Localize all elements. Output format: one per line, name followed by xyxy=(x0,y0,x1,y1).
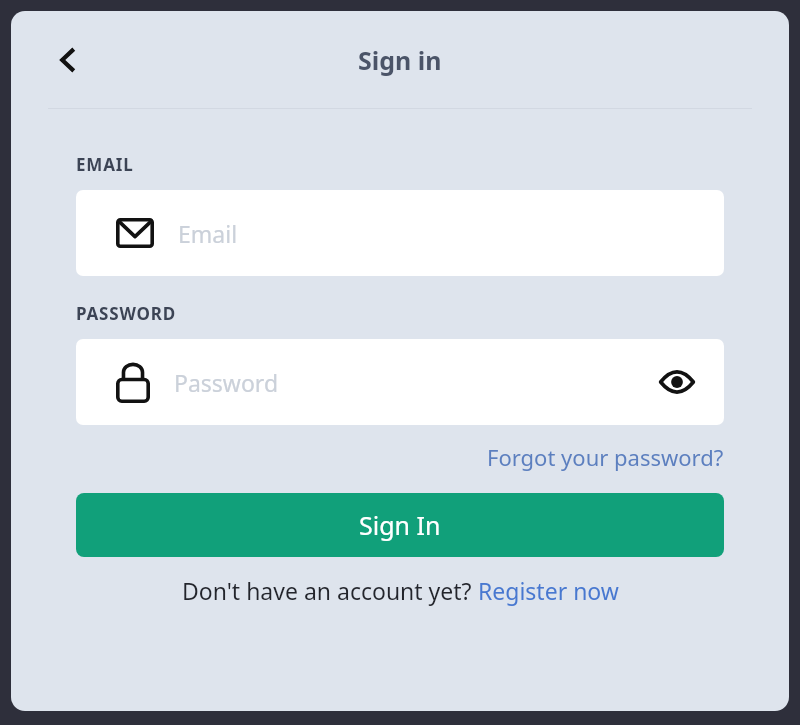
staticText: Don't have an account yet? xyxy=(182,575,478,606)
staticText: EMAIL xyxy=(76,153,134,176)
button[interactable]: Back xyxy=(39,31,97,89)
staticText: Sign In xyxy=(359,508,441,542)
staticText: Email xyxy=(178,218,238,249)
staticText: Forgot your password? xyxy=(487,442,724,472)
staticText: Register now xyxy=(478,575,619,606)
staticText: PASSWORD xyxy=(76,302,176,325)
button[interactable]: Show password xyxy=(648,353,706,411)
button[interactable]: Email xyxy=(76,190,724,276)
button[interactable]: Sign In xyxy=(76,493,724,557)
button[interactable]: Register now xyxy=(478,575,619,606)
staticText: Password xyxy=(174,367,279,398)
button[interactable]: Password xyxy=(76,339,724,425)
staticText: Sign in xyxy=(358,43,442,77)
button[interactable]: Forgot your password? xyxy=(487,437,724,477)
